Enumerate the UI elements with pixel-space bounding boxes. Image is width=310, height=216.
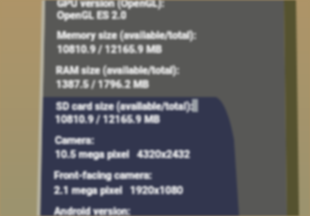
staticText: 1387.5 / 1796.2 MB <box>56 78 149 90</box>
staticText: RAM size (available/total): <box>56 64 180 76</box>
staticText: 10810.9 / 12165.9 MB <box>57 43 162 55</box>
staticText: 2.1 mega pixel 1920x1080 <box>54 184 184 196</box>
staticText: GPU version (OpenGL): <box>57 0 165 9</box>
staticText: Android version: <box>54 205 131 216</box>
staticText: OpenGL ES 2.0 <box>57 9 127 21</box>
staticText: 10.5 mega pixel 4320x2432 <box>55 148 191 160</box>
button[interactable]: GPU version (OpenGL): <box>0 0 310 216</box>
staticText: 10810.9 / 12165.9 MB <box>55 113 160 125</box>
staticText: Camera: <box>55 134 95 146</box>
staticText: Front-facing camera: <box>54 169 153 181</box>
staticText: Memory size (available/total): <box>57 29 197 41</box>
staticText: SD card size (available/total): <box>56 100 193 112</box>
